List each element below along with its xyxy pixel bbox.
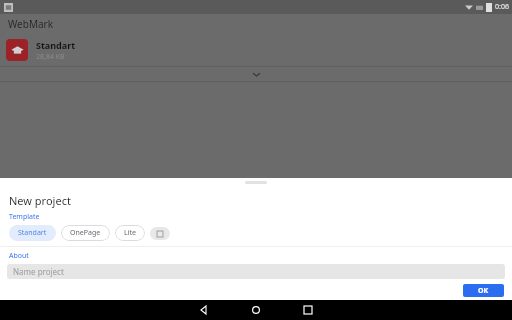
button[interactable]: OK <box>463 284 504 297</box>
button[interactable]: Name project <box>7 264 505 279</box>
button[interactable]: Back <box>178 300 230 320</box>
staticText: Lite <box>124 228 136 238</box>
staticText: New project <box>9 193 71 208</box>
button[interactable]: Home <box>230 300 282 320</box>
button[interactable]: Add template <box>150 227 170 240</box>
button[interactable]: OnePage <box>61 225 110 241</box>
staticText: 28,84 KB <box>36 52 65 62</box>
button[interactable]: Lite <box>115 225 145 241</box>
staticText: About <box>9 251 29 261</box>
staticText: Standart <box>36 39 76 51</box>
staticText: OK <box>478 286 489 296</box>
staticText: WebMark <box>8 17 54 31</box>
button[interactable]: Recents <box>282 300 334 320</box>
staticText: Name project <box>13 266 64 277</box>
button[interactable]: Standart <box>9 225 56 241</box>
staticText: OnePage <box>70 228 101 238</box>
staticText: Template <box>9 212 40 222</box>
staticText: 0:06 <box>495 2 509 12</box>
button[interactable]: Standart <box>0 34 512 66</box>
staticText: Standart <box>18 228 47 238</box>
